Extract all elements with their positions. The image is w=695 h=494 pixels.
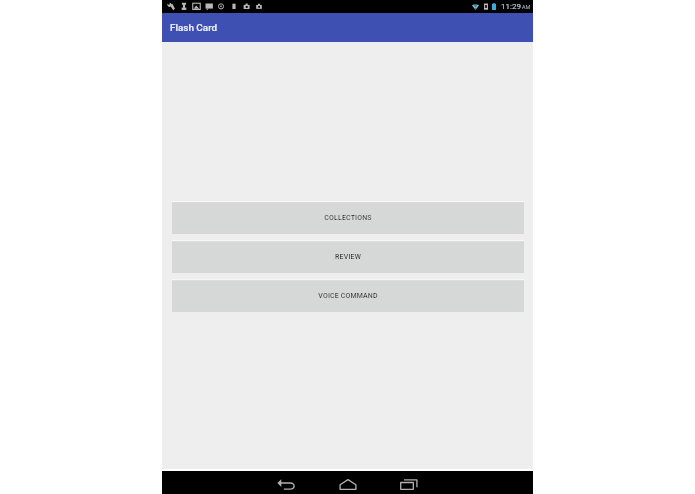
button[interactable]: Home [332, 473, 364, 494]
staticText: Flash Card [170, 22, 218, 34]
staticText: COLLECTIONS [324, 214, 372, 222]
button[interactable]: COLLECTIONS [172, 201, 524, 234]
staticText: VOICE COMMAND [318, 292, 378, 300]
button[interactable]: VOICE COMMAND [172, 279, 524, 312]
staticText: REVIEW [335, 253, 361, 261]
button[interactable]: REVIEW [172, 240, 524, 273]
staticText: 11:29 [501, 2, 521, 11]
button[interactable]: Recent apps [393, 473, 425, 494]
button[interactable]: Back [270, 473, 302, 494]
staticText: AM [522, 4, 531, 11]
